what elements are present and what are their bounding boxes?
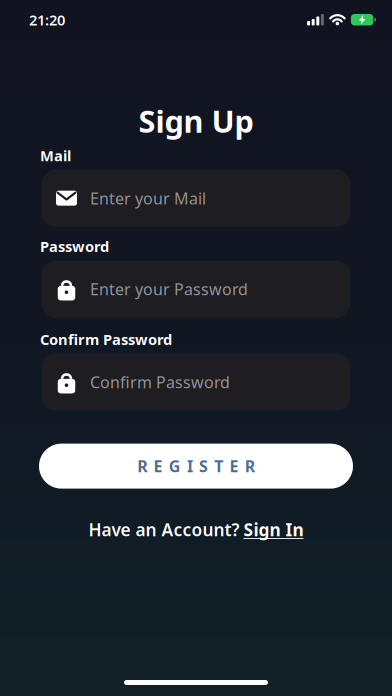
button[interactable]: Enter your Mail	[42, 170, 350, 227]
staticText: R	[137, 455, 147, 477]
staticText: E	[153, 455, 162, 477]
staticText: S	[199, 455, 208, 477]
staticText: 21:20	[29, 10, 65, 29]
staticText: Have an Account?	[88, 518, 239, 541]
staticText: Mail	[40, 146, 71, 165]
staticText: Confirm Password	[40, 330, 172, 349]
staticText: G	[169, 455, 181, 477]
staticText: T	[214, 455, 223, 477]
staticText: Enter your Mail	[90, 188, 206, 209]
staticText: Sign Up	[138, 100, 253, 141]
staticText: Password	[40, 237, 109, 256]
button[interactable]: Have an Account?	[88, 518, 303, 541]
button[interactable]: Confirm Password	[42, 354, 350, 411]
staticText: R	[245, 455, 255, 477]
staticText: Confirm Password	[90, 371, 230, 393]
button[interactable]: R	[39, 444, 353, 489]
staticText: Enter your Password	[90, 278, 248, 300]
staticText: I	[187, 455, 193, 477]
button[interactable]: Enter your Password	[42, 261, 350, 318]
staticText: E	[229, 455, 238, 477]
staticText: Sign In	[243, 518, 303, 541]
